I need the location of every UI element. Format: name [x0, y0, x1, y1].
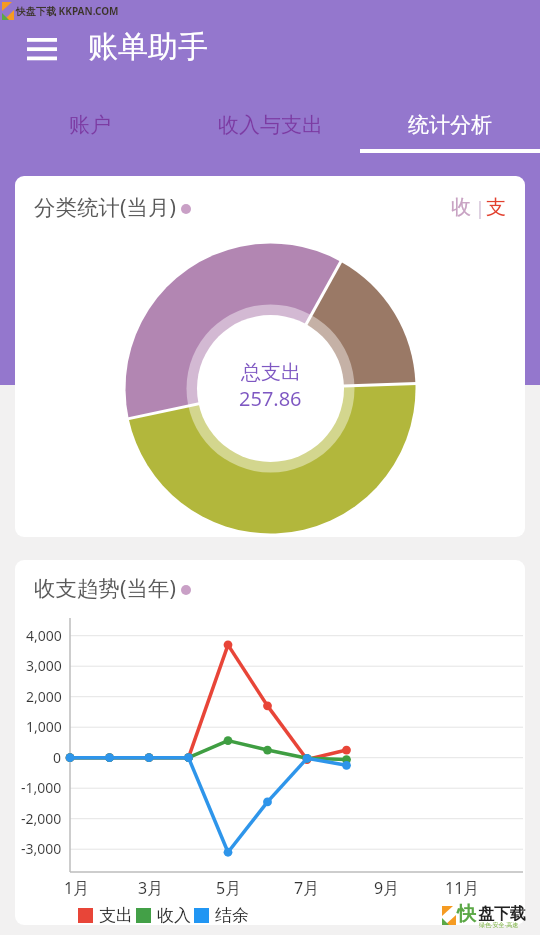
staticText: 收入与支出 — [218, 112, 323, 138]
staticText: 5月 — [216, 877, 242, 899]
staticText: -3,000 — [21, 839, 62, 858]
staticText: 7月 — [294, 877, 320, 899]
staticText: -2,000 — [21, 809, 62, 828]
staticText: 3月 — [138, 877, 164, 899]
staticText: 收支趋势(当年) — [34, 573, 176, 602]
staticText: 账户 — [69, 112, 111, 138]
staticText: 统计分析 — [408, 112, 492, 138]
staticText: 0 — [53, 748, 62, 767]
button[interactable]: 统计分析 — [360, 97, 540, 153]
staticText: 收入 — [157, 905, 191, 925]
staticText: 1月 — [64, 877, 90, 899]
staticText: 盘下载 — [478, 904, 526, 924]
staticText: 快盘下载 KKPAN.COM — [16, 4, 119, 18]
button[interactable]: 支 — [486, 195, 507, 219]
staticText: 收 — [451, 195, 471, 219]
button[interactable]: 收 — [451, 195, 472, 219]
button[interactable]: 账户 — [0, 97, 180, 153]
staticText: 账单助手 — [88, 28, 208, 66]
staticText: -1,000 — [21, 778, 62, 797]
staticText: 总支出 — [241, 360, 301, 385]
staticText: 快 — [457, 902, 476, 926]
staticText: 3,000 — [26, 656, 62, 675]
staticText: 结余 — [215, 905, 249, 925]
staticText: 支 — [486, 195, 506, 219]
staticText: 分类统计(当月) — [34, 192, 176, 221]
staticText: 4,000 — [26, 626, 62, 645]
staticText: | — [475, 196, 485, 221]
staticText: 绿色·安全·高速 — [479, 921, 519, 929]
staticText: 257.86 — [239, 385, 302, 412]
staticText: 9月 — [374, 877, 400, 899]
staticText: 1,000 — [26, 717, 62, 736]
staticText: 支出 — [99, 905, 133, 925]
staticText: 11月 — [445, 877, 480, 899]
button[interactable]: 收入与支出 — [180, 97, 360, 153]
button[interactable] — [16, 26, 68, 72]
staticText: 2,000 — [26, 687, 62, 706]
